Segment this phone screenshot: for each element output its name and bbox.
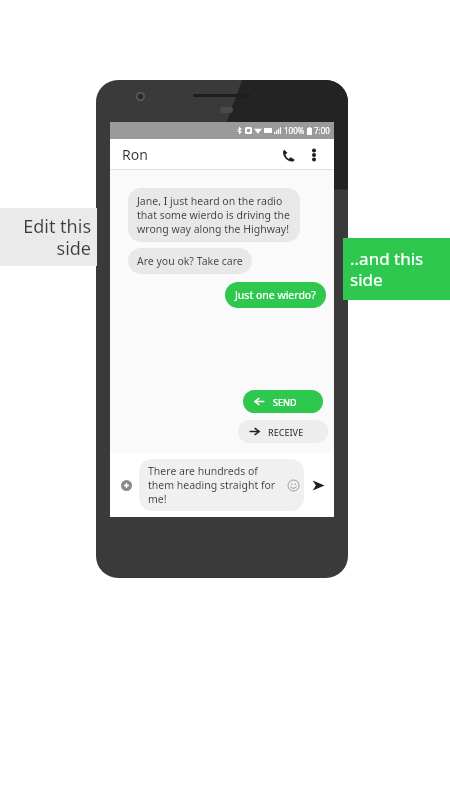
staticText: Edit this side	[23, 214, 91, 261]
button[interactable]: SEND	[243, 390, 323, 413]
staticText: ..and this side	[350, 247, 424, 291]
staticText: RECEIVE	[268, 426, 304, 438]
button[interactable]: Are you ok? Take care	[128, 248, 252, 274]
staticText: Jane, I just heard on the radio that som…	[137, 194, 291, 236]
staticText: Ron	[122, 145, 148, 164]
button[interactable]: Jane, I just heard on the radio that som…	[128, 188, 300, 242]
button[interactable]: Just one wierdo?	[225, 282, 326, 308]
button[interactable]: Call	[276, 143, 300, 167]
button[interactable]: Edit this side	[0, 208, 97, 266]
button[interactable]: There are hundreds of them heading strai…	[139, 459, 304, 511]
staticText: 7:00	[314, 125, 330, 136]
staticText: 100%	[284, 125, 305, 136]
button[interactable]: Send message	[308, 475, 328, 495]
staticText: Are you ok? Take care	[137, 254, 243, 268]
staticText: SEND	[273, 396, 297, 408]
button[interactable]: Attach	[116, 475, 136, 495]
button[interactable]: More options	[302, 143, 326, 167]
button[interactable]: ..and this side	[343, 238, 450, 300]
button[interactable]: RECEIVE	[238, 420, 328, 443]
staticText: There are hundreds of them heading strai…	[148, 464, 284, 506]
staticText: Just one wierdo?	[235, 288, 316, 302]
